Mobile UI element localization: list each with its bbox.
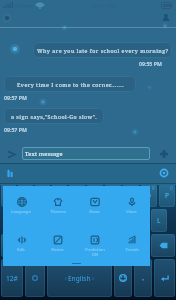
button[interactable]: Settings xyxy=(157,166,171,180)
staticText: Store xyxy=(89,209,100,215)
staticText: Edit xyxy=(17,247,25,253)
button[interactable]: C xyxy=(61,234,77,257)
staticText: 3 xyxy=(45,185,48,191)
staticText: Resize xyxy=(51,247,64,253)
staticText: 1 xyxy=(11,185,14,191)
button[interactable]: F xyxy=(61,209,77,232)
staticText: 5 xyxy=(80,185,83,191)
staticText: Text message xyxy=(25,150,63,158)
button[interactable]: Shift xyxy=(1,234,24,257)
button[interactable]: S xyxy=(26,209,41,232)
staticText: X xyxy=(49,241,53,250)
button[interactable]: I xyxy=(123,184,139,207)
staticText: 6 xyxy=(98,185,101,191)
staticText: W xyxy=(22,191,29,200)
button[interactable]: L xyxy=(151,209,167,232)
button[interactable]: Y xyxy=(87,184,103,207)
button[interactable]: Store xyxy=(76,186,113,224)
staticText: Prediction ON xyxy=(85,247,105,257)
staticText: a sign says,"School-Go slow". xyxy=(11,113,98,120)
button[interactable]: Voice xyxy=(113,186,150,224)
staticText: › xyxy=(91,275,94,282)
button[interactable]: E xyxy=(35,184,50,207)
button[interactable]: N xyxy=(115,234,131,257)
button[interactable]: Every time I come to the corner....... xyxy=(4,76,136,92)
staticText: I xyxy=(130,191,133,200)
button[interactable]: Why are you late for school every mornin… xyxy=(33,42,172,58)
button[interactable]: 12# xyxy=(1,259,23,297)
button[interactable]: Enter xyxy=(154,259,175,297)
button[interactable]: P xyxy=(159,184,175,207)
button[interactable]: W xyxy=(18,184,33,207)
button[interactable]: Send xyxy=(3,146,19,162)
staticText: M xyxy=(138,241,144,250)
button[interactable]: D xyxy=(43,209,59,232)
button[interactable]: U xyxy=(105,184,121,207)
button[interactable]: Backspace xyxy=(151,234,175,257)
staticText: 4 xyxy=(62,185,65,191)
button[interactable]: J xyxy=(115,209,131,232)
button[interactable]: R xyxy=(52,184,67,207)
staticText: B xyxy=(103,241,108,250)
staticText: Language xyxy=(11,209,31,215)
button[interactable]: X xyxy=(43,234,59,257)
button[interactable]: T xyxy=(69,184,85,207)
staticText: ‹ xyxy=(65,275,68,282)
button[interactable]: Resize xyxy=(39,224,76,262)
staticText: 0 xyxy=(170,185,173,191)
button[interactable]: Contact photo xyxy=(2,13,12,23)
button[interactable]: O xyxy=(141,184,157,207)
button[interactable]: Text message xyxy=(22,147,150,160)
button[interactable]: Themes xyxy=(39,186,76,224)
button[interactable]: ‹ xyxy=(47,259,112,297)
button[interactable]: Contact details xyxy=(159,11,172,24)
button[interactable]: Period xyxy=(134,259,152,297)
button[interactable]: Q xyxy=(1,184,16,207)
staticText: Trends xyxy=(125,247,139,253)
staticText: 09:57 PM xyxy=(4,126,27,133)
staticText: 2 xyxy=(28,185,31,191)
staticText: L xyxy=(157,216,161,225)
button[interactable]: Add attachment xyxy=(156,146,171,161)
staticText: 12# xyxy=(6,274,18,283)
button[interactable]: a sign says,"School-Go slow". xyxy=(4,108,104,124)
button[interactable]: Edit xyxy=(3,224,39,262)
staticText: 7 xyxy=(116,185,119,191)
staticText: N xyxy=(120,241,126,250)
button[interactable]: Keyboard menu xyxy=(3,166,17,180)
staticText: 09:55 PM xyxy=(139,60,162,67)
staticText: English xyxy=(68,274,91,283)
staticText: Themes xyxy=(50,209,66,215)
button[interactable]: Prediction ON xyxy=(76,224,113,262)
button[interactable]: B xyxy=(97,234,113,257)
button[interactable]: V xyxy=(79,234,95,257)
staticText: Why are you late for school every mornin… xyxy=(37,47,169,54)
staticText: Voice xyxy=(126,209,137,215)
button[interactable]: Language xyxy=(3,186,39,224)
button[interactable]: Emoji xyxy=(114,259,132,297)
button[interactable]: A xyxy=(9,209,24,232)
staticText: Every time I come to the corner....... xyxy=(17,81,124,88)
button[interactable]: G xyxy=(79,209,95,232)
button[interactable]: Trends xyxy=(113,224,150,262)
button[interactable]: H xyxy=(97,209,113,232)
staticText: O xyxy=(146,191,152,200)
button[interactable]: K xyxy=(133,209,149,232)
button[interactable]: Settings xyxy=(25,259,45,297)
button[interactable]: M xyxy=(133,234,149,257)
staticText: Y xyxy=(93,191,97,200)
